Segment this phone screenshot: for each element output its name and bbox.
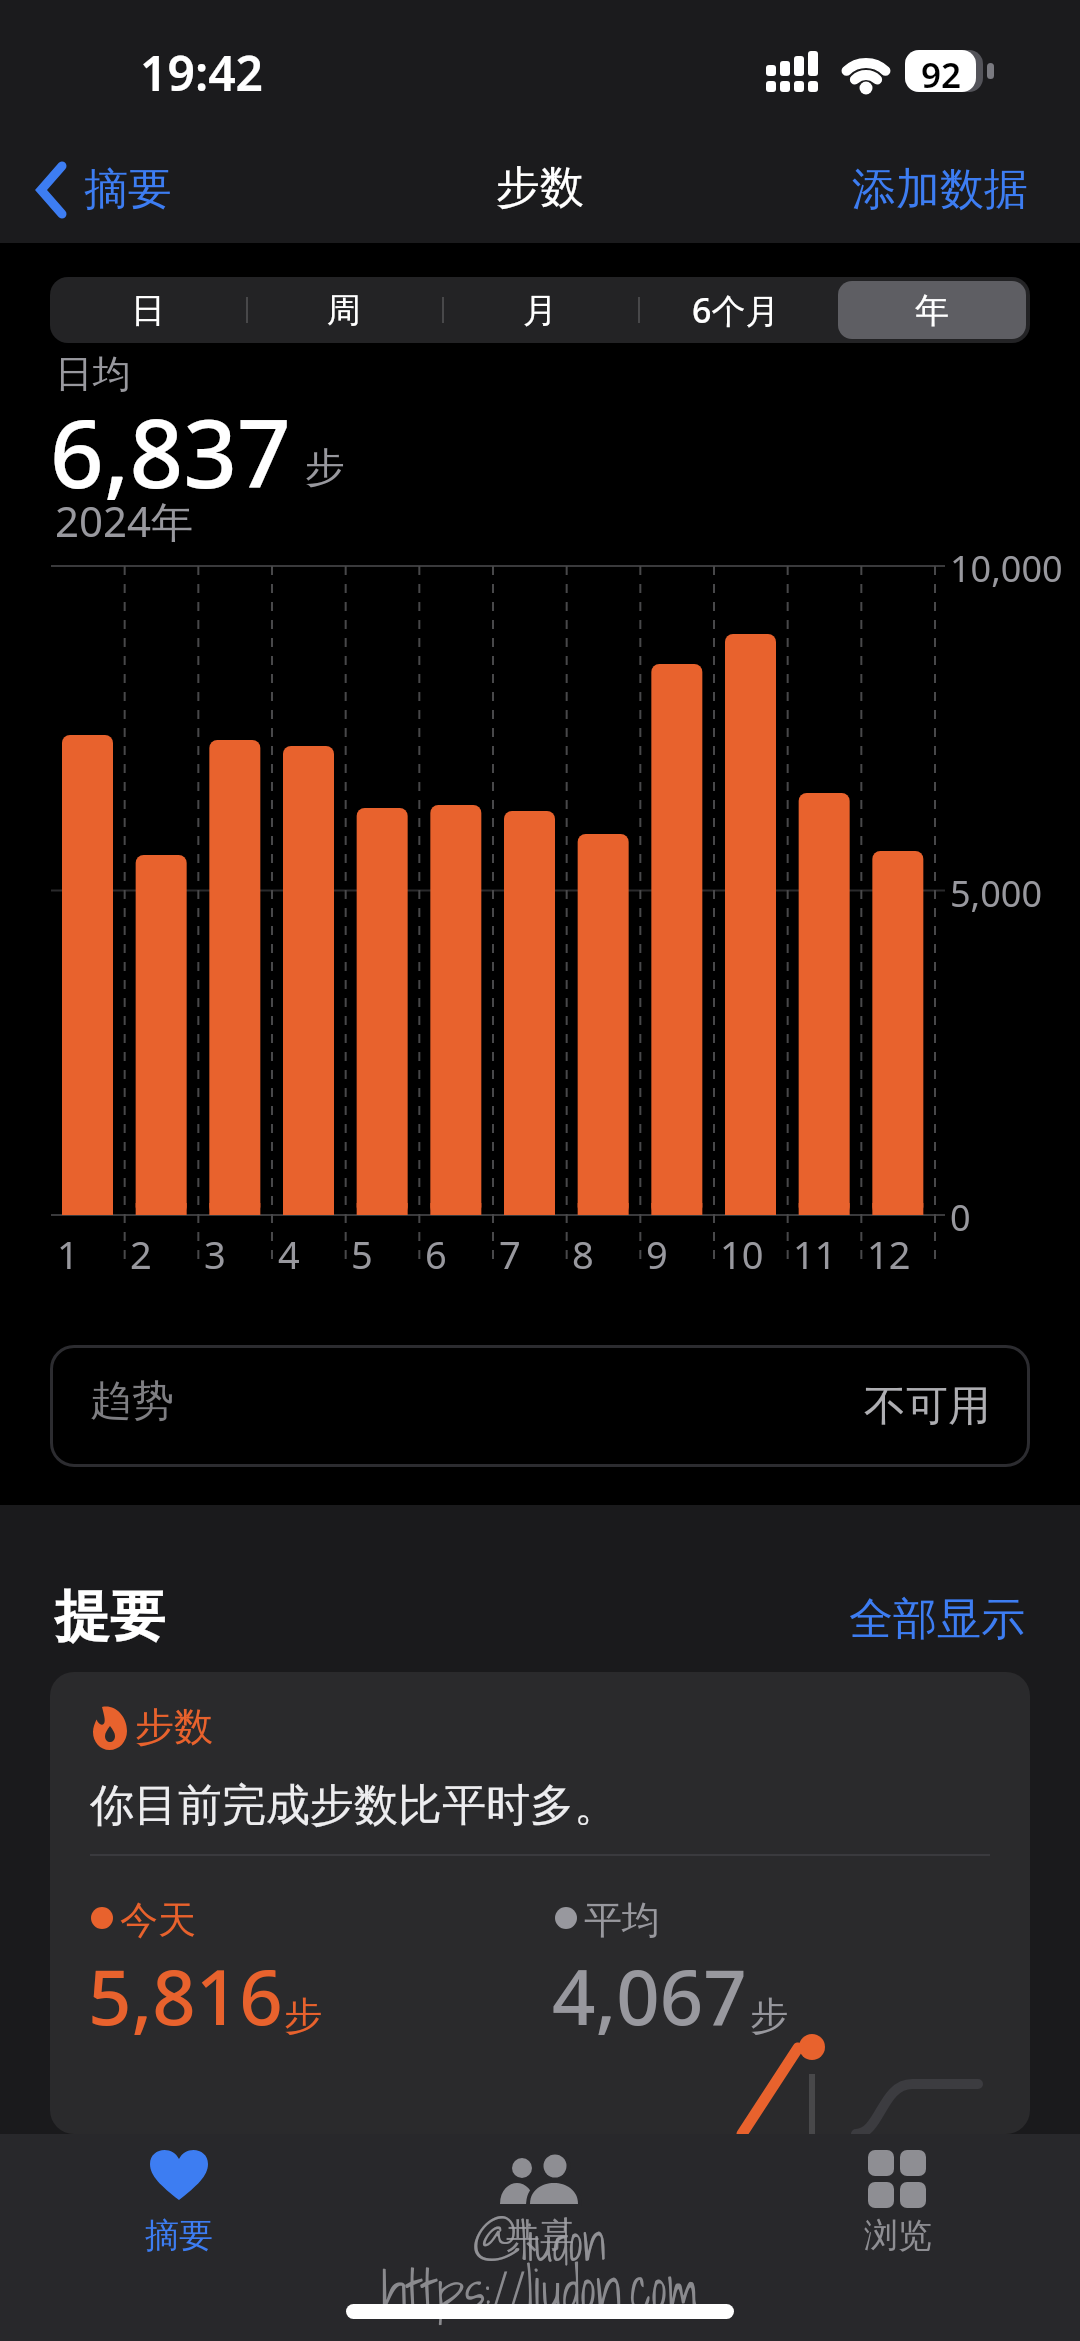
staticText: 日 bbox=[131, 289, 165, 332]
staticText: 步 bbox=[284, 1992, 322, 2040]
staticText: 8 bbox=[572, 1228, 594, 1280]
staticText: 5,000 bbox=[950, 869, 1043, 918]
staticText: https://liudon.com bbox=[381, 2244, 699, 2334]
staticText: 1 bbox=[57, 1228, 79, 1280]
staticText: 12 bbox=[867, 1228, 911, 1280]
button[interactable] bbox=[120, 2140, 240, 2270]
staticText: 趋势 bbox=[90, 1375, 174, 1428]
button[interactable]: 6个月 bbox=[638, 277, 834, 343]
staticText: 3 bbox=[204, 1228, 226, 1280]
staticText: 月 bbox=[523, 289, 557, 332]
staticText: 步 bbox=[750, 1992, 788, 2040]
staticText: 平均 bbox=[584, 1896, 660, 1944]
staticText: @liudon bbox=[473, 2202, 607, 2282]
button[interactable]: 日 bbox=[50, 277, 246, 343]
button[interactable]: 周 bbox=[246, 277, 442, 343]
button[interactable]: 趋势 bbox=[50, 1345, 1030, 1467]
staticText: 步数 bbox=[496, 160, 584, 215]
staticText: 5 bbox=[351, 1228, 373, 1280]
button[interactable] bbox=[840, 2140, 960, 2270]
staticText: 不可用 bbox=[864, 1380, 990, 1433]
staticText: 摘要 bbox=[145, 2214, 213, 2257]
staticText: 周 bbox=[327, 289, 361, 332]
staticText: 92 bbox=[921, 51, 962, 99]
staticText: 2024年 bbox=[55, 492, 194, 549]
staticText: 提要 bbox=[55, 1582, 165, 1651]
staticText: 今天 bbox=[120, 1896, 196, 1944]
staticText: 5,816 bbox=[88, 1944, 283, 2048]
staticText: 0 bbox=[950, 1193, 971, 1242]
button[interactable]: 全部显示 bbox=[849, 1592, 1025, 1647]
staticText: 9 bbox=[646, 1228, 668, 1280]
staticText: 11 bbox=[793, 1228, 837, 1280]
staticText: 年 bbox=[915, 289, 949, 332]
staticText: 10,000 bbox=[950, 544, 1063, 593]
staticText: 2 bbox=[130, 1228, 152, 1280]
staticText: 共享 bbox=[506, 2214, 574, 2257]
staticText: 日均 bbox=[55, 350, 131, 398]
button[interactable]: 年 bbox=[834, 277, 1030, 343]
staticText: 6 bbox=[425, 1228, 447, 1280]
button[interactable]: 添加数据 bbox=[852, 162, 1028, 217]
staticText: 19:42 bbox=[140, 40, 264, 105]
staticText: 浏览 bbox=[864, 2214, 932, 2257]
staticText: 6,837 bbox=[50, 388, 291, 516]
button[interactable] bbox=[36, 162, 66, 218]
button[interactable]: 月 bbox=[442, 277, 638, 343]
staticText: 步数 bbox=[135, 1702, 213, 1751]
staticText: 4 bbox=[278, 1228, 300, 1280]
staticText: 7 bbox=[499, 1228, 521, 1280]
staticText: 10 bbox=[720, 1228, 764, 1280]
button[interactable] bbox=[480, 2140, 600, 2270]
staticText: 4,067 bbox=[552, 1944, 747, 2048]
staticText: 你目前完成步数比平时多。 bbox=[90, 1778, 618, 1833]
staticText: 步 bbox=[305, 442, 345, 492]
button[interactable]: 步数 bbox=[50, 1672, 1030, 2134]
staticText: 6个月 bbox=[692, 287, 780, 333]
